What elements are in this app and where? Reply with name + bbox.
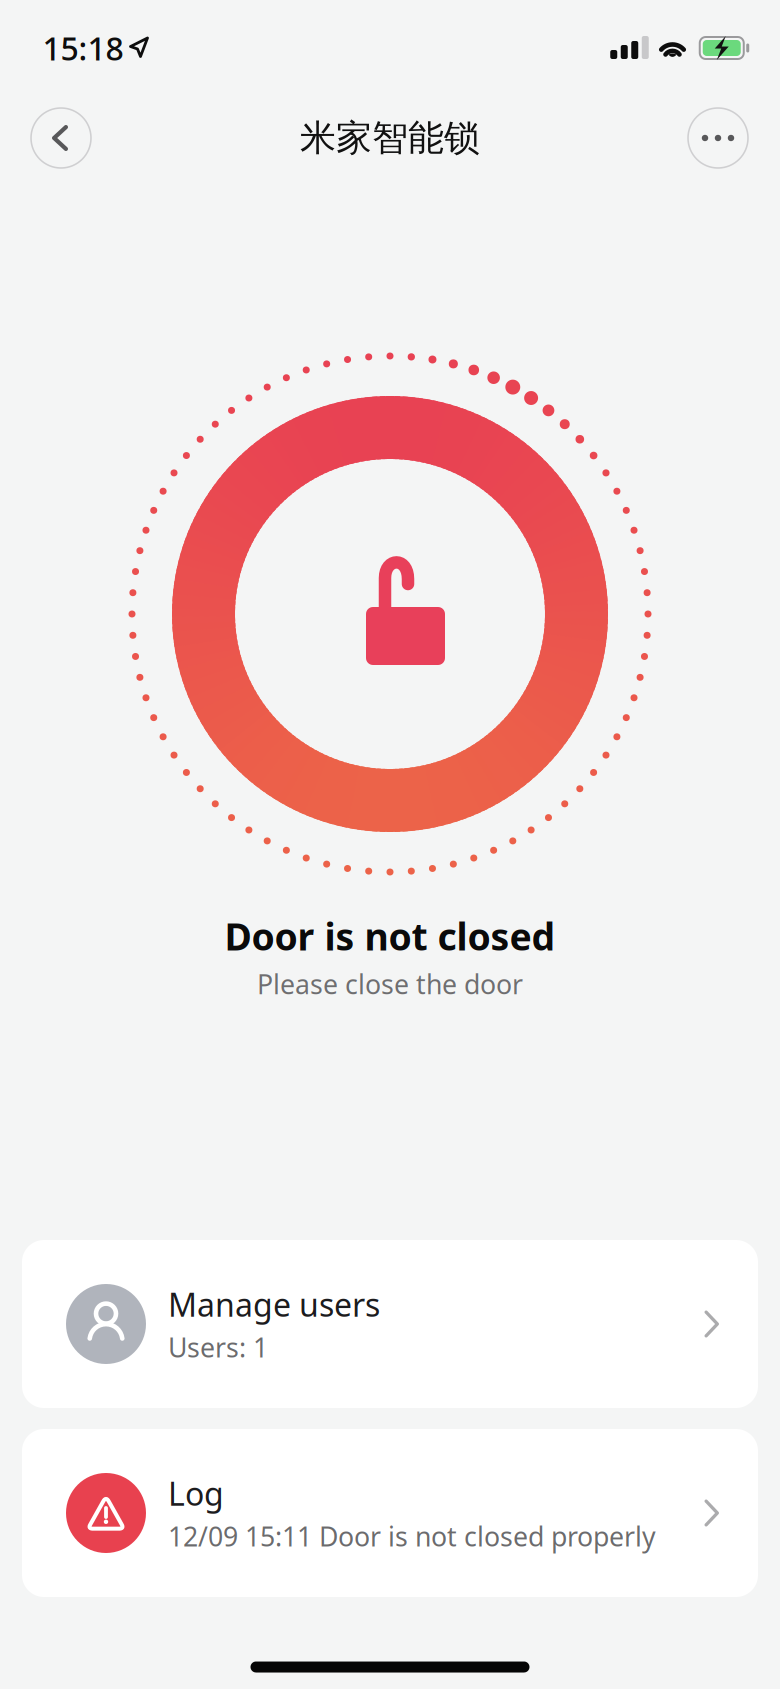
button[interactable]: Back [31, 108, 91, 168]
staticText: 12/09 15:11 Door is not closed properly [168, 1518, 656, 1554]
staticText: Please close the door [257, 966, 523, 1002]
button[interactable]: Manage users [22, 1240, 758, 1408]
staticText: 米家智能锁 [300, 116, 480, 160]
staticText: Users: 1 [168, 1329, 268, 1365]
staticText: Manage users [168, 1283, 380, 1325]
staticText: Log [168, 1472, 224, 1514]
button[interactable]: Log [22, 1429, 758, 1597]
staticText: Door is not closed [224, 911, 555, 961]
staticText: 15:18 [42, 27, 123, 69]
button[interactable]: More options [688, 108, 748, 168]
